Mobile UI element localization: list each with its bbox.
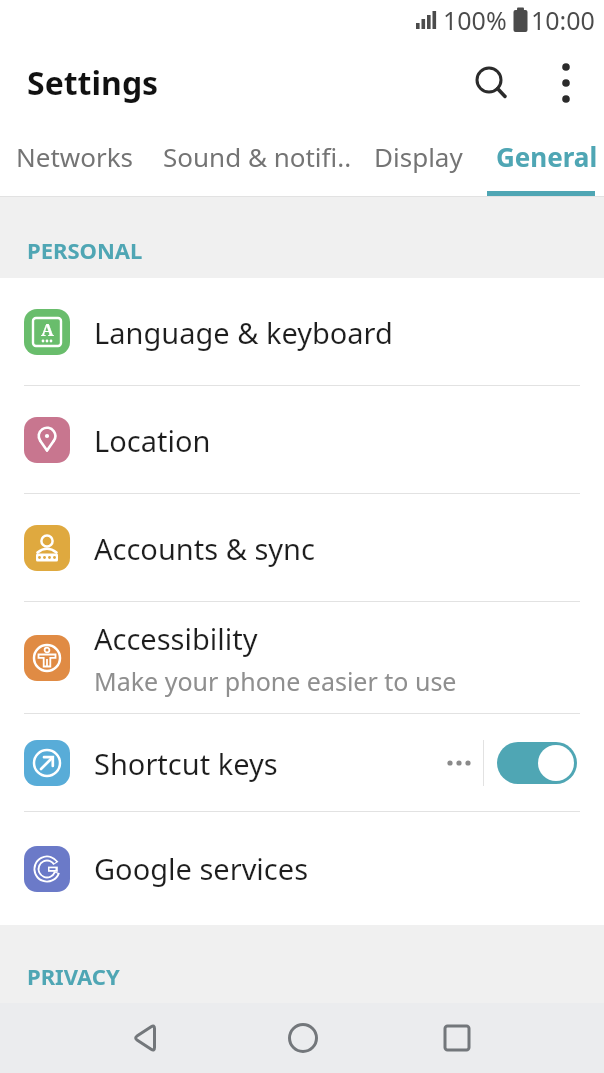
button[interactable]: A <box>0 278 604 386</box>
button[interactable]: Accounts & sync <box>0 494 604 602</box>
staticText: Google services <box>94 849 309 888</box>
staticText: Language & keyboard <box>94 313 393 352</box>
button[interactable]: Location <box>0 386 604 494</box>
button[interactable] <box>466 58 516 108</box>
button[interactable]: Google services <box>0 812 604 925</box>
staticText: 10:00 <box>531 3 595 37</box>
button[interactable] <box>268 1003 338 1073</box>
staticText: Settings <box>27 61 159 105</box>
button[interactable]: Sound & notifi.. <box>163 139 352 174</box>
button[interactable] <box>112 1003 182 1073</box>
button[interactable]: Display <box>374 139 463 174</box>
staticText: Make your phone easier to use <box>94 664 457 698</box>
button[interactable] <box>422 1003 492 1073</box>
staticText: PERSONAL <box>27 235 143 265</box>
button[interactable]: Accessibility <box>0 602 604 714</box>
button[interactable]: General <box>496 139 598 174</box>
staticText: 100% <box>443 3 507 37</box>
button[interactable] <box>542 59 590 107</box>
staticText: A <box>41 318 54 341</box>
staticText: Accessibility <box>94 619 258 658</box>
button[interactable]: Shortcut keys <box>0 714 604 812</box>
staticText: Shortcut keys <box>94 744 278 783</box>
staticText: Accounts & sync <box>94 529 315 568</box>
staticText: Location <box>94 421 211 460</box>
button[interactable] <box>497 742 577 784</box>
staticText: PRIVACY <box>27 961 120 991</box>
button[interactable]: Networks <box>16 139 134 174</box>
